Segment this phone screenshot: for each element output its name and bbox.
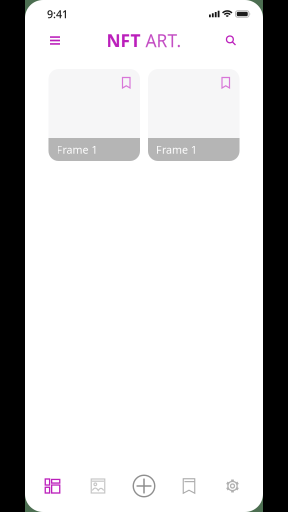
staticText: 9:41 (47, 7, 68, 21)
staticText: ART. (140, 29, 181, 52)
button[interactable]: Gallery (75, 464, 121, 508)
button[interactable]: Frame 1 (148, 69, 239, 161)
staticText: Frame 1 (156, 142, 197, 157)
staticText: Frame 1 (56, 142, 97, 157)
staticText: NFT (106, 29, 140, 52)
button[interactable]: Settings (211, 464, 254, 508)
button[interactable]: Bookmark (222, 77, 229, 88)
button[interactable]: Frame 1 (48, 69, 140, 161)
button[interactable]: Home (30, 464, 75, 508)
button[interactable]: Add (121, 464, 167, 508)
button[interactable]: Bookmark (122, 77, 130, 88)
button[interactable]: Menu (46, 32, 64, 49)
button[interactable]: Search (222, 31, 240, 49)
button[interactable]: Saved (167, 464, 211, 508)
